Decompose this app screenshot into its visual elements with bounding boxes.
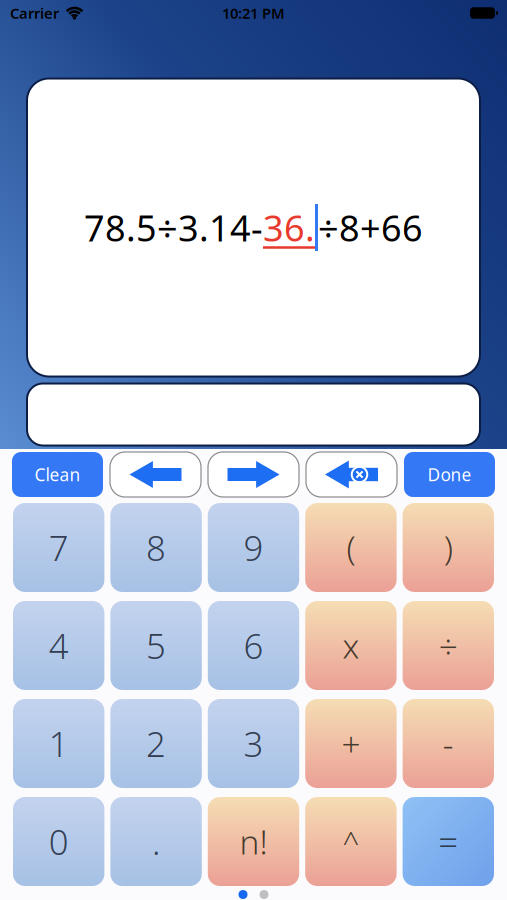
button[interactable]: Done xyxy=(404,452,495,497)
button[interactable]: 6 xyxy=(208,601,299,690)
button[interactable]: 0 xyxy=(13,797,104,886)
staticText: ÷ xyxy=(439,623,458,668)
button[interactable]: ( xyxy=(305,503,397,592)
button[interactable]: Backspace xyxy=(306,452,397,497)
staticText: 8 xyxy=(146,524,166,570)
button[interactable]: 2 xyxy=(110,699,202,788)
staticText: ) xyxy=(444,525,453,570)
staticText: . xyxy=(152,818,160,864)
button[interactable]: Page 1 of 2 xyxy=(238,890,268,899)
staticText: 36. xyxy=(263,204,315,251)
staticText: + xyxy=(341,721,360,766)
staticText: 2 xyxy=(146,720,166,766)
button[interactable]: - xyxy=(403,699,494,788)
button[interactable]: 5 xyxy=(110,601,202,690)
button[interactable]: 4 xyxy=(13,601,104,690)
button[interactable]: 8 xyxy=(110,503,202,592)
button[interactable]: . xyxy=(110,797,202,886)
staticText: Done xyxy=(427,463,471,486)
staticText: 78.5÷3.14- xyxy=(84,204,263,251)
staticText: = xyxy=(438,818,458,864)
button[interactable]: ) xyxy=(403,503,494,592)
button[interactable]: Move cursor left xyxy=(110,452,201,497)
staticText: 9 xyxy=(243,524,263,570)
button[interactable]: x xyxy=(305,601,397,690)
button[interactable]: 3 xyxy=(208,699,299,788)
staticText: 0 xyxy=(49,818,69,864)
staticText: Carrier xyxy=(10,3,59,23)
button[interactable]: = xyxy=(403,797,494,886)
staticText: ( xyxy=(346,525,355,570)
staticText: 6 xyxy=(243,622,263,668)
button[interactable]: n! xyxy=(208,797,299,886)
staticText: x xyxy=(342,623,359,668)
button[interactable]: ÷ xyxy=(403,601,494,690)
staticText: 4 xyxy=(49,622,69,668)
staticText: 5 xyxy=(146,622,166,668)
staticText: - xyxy=(443,721,454,766)
button[interactable]: Move cursor right xyxy=(208,452,299,497)
staticText: 1 xyxy=(49,720,69,766)
staticText: ^ xyxy=(342,822,359,861)
staticText: 7 xyxy=(49,524,69,570)
button[interactable]: + xyxy=(305,699,397,788)
button[interactable]: 1 xyxy=(13,699,104,788)
button[interactable]: 9 xyxy=(208,503,299,592)
button[interactable]: Result field xyxy=(27,383,480,445)
staticText: ÷8+66 xyxy=(318,204,423,251)
button[interactable]: Expression input xyxy=(27,78,480,376)
button[interactable]: 7 xyxy=(13,503,104,592)
staticText: 10:21 PM xyxy=(222,3,285,23)
button[interactable]: Clean xyxy=(12,452,103,497)
staticText: 3 xyxy=(243,720,263,766)
staticText: n! xyxy=(239,819,267,864)
button[interactable]: ^ xyxy=(305,797,397,886)
staticText: Clean xyxy=(34,463,80,486)
